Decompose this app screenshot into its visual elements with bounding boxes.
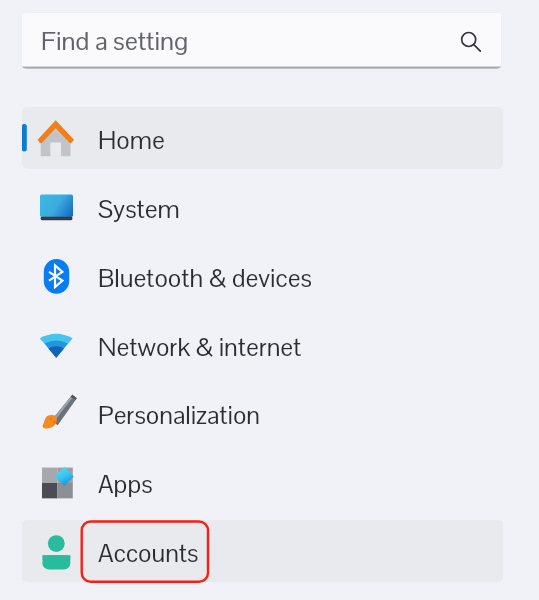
staticText: Find a setting [41, 24, 189, 57]
button[interactable]: Home [22, 107, 503, 169]
button[interactable]: Network & internet [22, 314, 503, 376]
staticText: Apps [98, 468, 153, 500]
button[interactable]: Bluetooth & devices [22, 245, 503, 307]
staticText: Network & internet [98, 331, 302, 363]
staticText: Accounts [98, 537, 199, 569]
button[interactable]: System [22, 176, 503, 238]
staticText: Bluetooth & devices [98, 262, 312, 294]
button[interactable]: Personalization [22, 382, 503, 444]
button[interactable]: Find a setting [21, 12, 502, 69]
button[interactable]: Apps [22, 451, 503, 513]
button[interactable]: Accounts [22, 520, 503, 582]
staticText: System [98, 193, 180, 225]
staticText: Personalization [98, 399, 261, 431]
staticText: Home [98, 124, 165, 156]
button[interactable]: Search [455, 27, 485, 51]
